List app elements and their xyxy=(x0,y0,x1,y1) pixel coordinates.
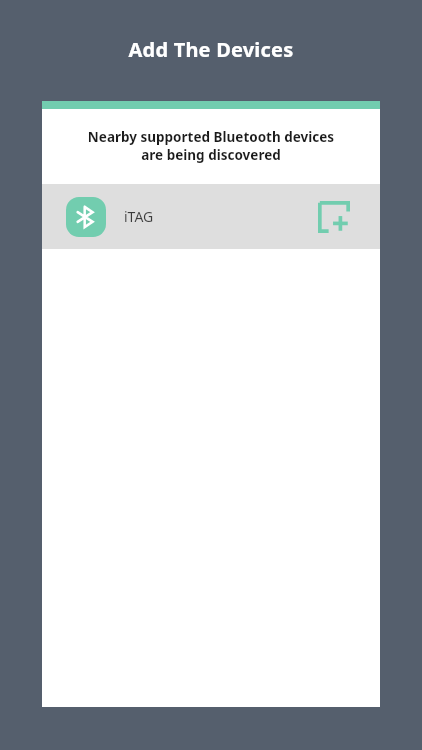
staticText: Nearby supported Bluetooth devices are b… xyxy=(54,128,368,164)
button[interactable]: Add device xyxy=(310,193,358,241)
staticText: iTAG xyxy=(124,207,154,226)
button[interactable]: iTAG xyxy=(42,184,380,249)
staticText: Add The Devices xyxy=(0,36,422,63)
